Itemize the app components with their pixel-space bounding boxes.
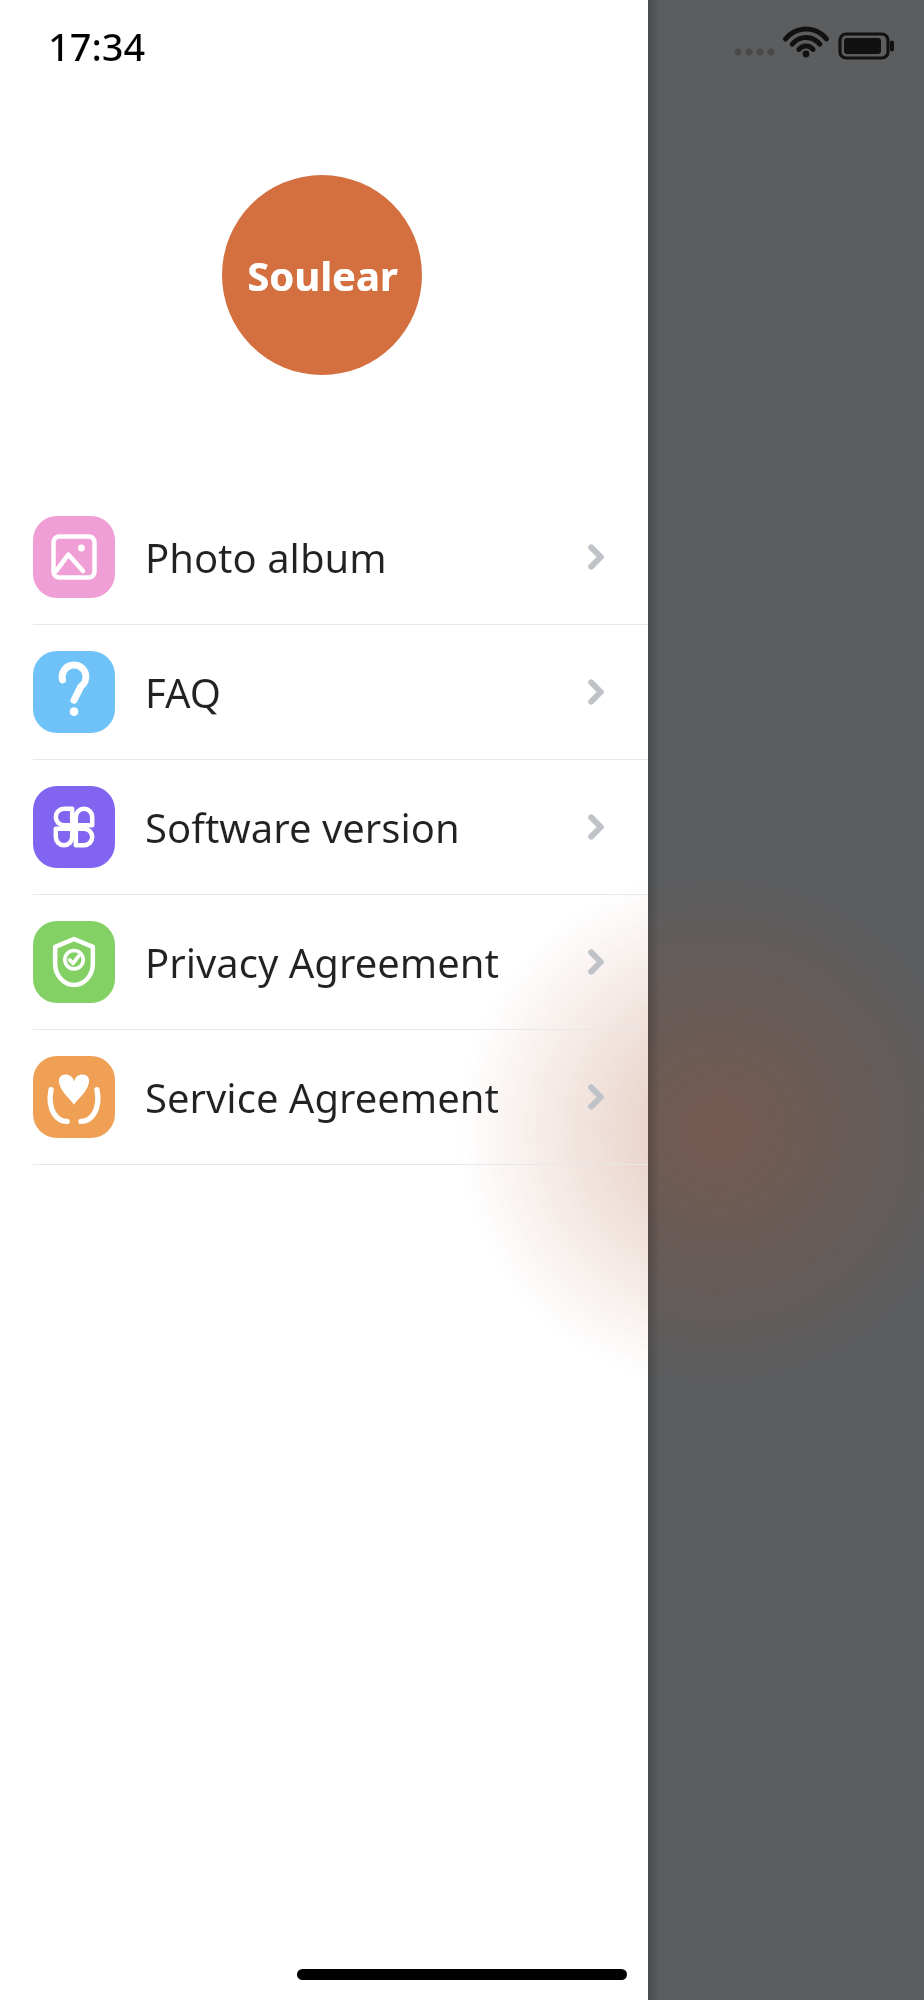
staticText: 17:34 <box>48 20 146 72</box>
staticText: Service Agreement <box>145 1070 578 1124</box>
staticText: Photo album <box>145 530 578 584</box>
staticText: FAQ <box>145 665 578 719</box>
button[interactable]: Service <box>0 1030 648 1165</box>
other: Photo album <box>33 516 115 598</box>
staticText: Privacy Agreement <box>145 935 578 989</box>
button[interactable]: FAQ <box>0 625 648 760</box>
other: Software version <box>33 786 115 868</box>
staticText: Software version <box>145 800 578 854</box>
other: Privacy <box>33 921 115 1003</box>
other: FAQ <box>33 651 115 733</box>
other: Service <box>33 1056 115 1138</box>
button[interactable]: Software version <box>0 760 648 895</box>
button[interactable]: Privacy <box>0 895 648 1030</box>
button[interactable]: Photo album <box>0 490 648 625</box>
staticText: Soulear <box>247 248 398 302</box>
